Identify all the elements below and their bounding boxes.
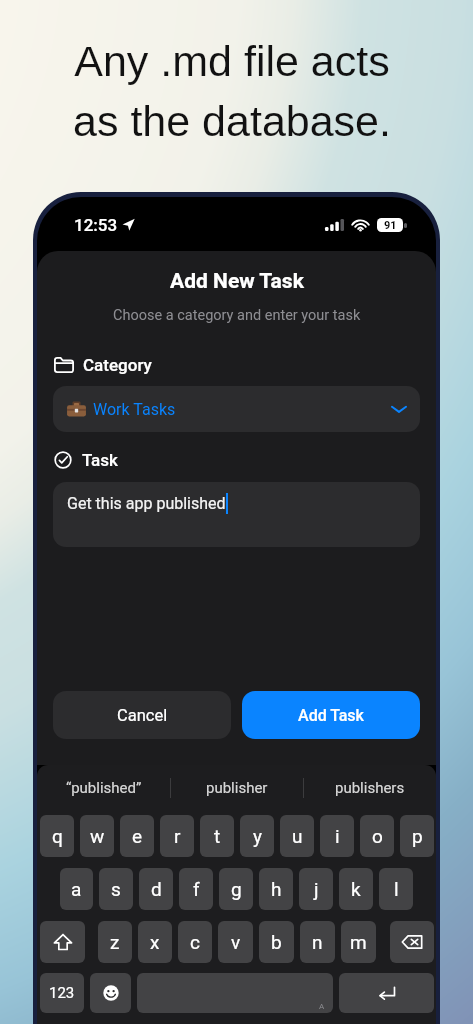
staticText: publisher (206, 779, 268, 797)
button[interactable]: Get this app published (53, 482, 420, 547)
staticText: w (90, 825, 105, 847)
staticText: v (231, 931, 241, 953)
button[interactable]: i (320, 815, 354, 857)
button[interactable]: 123 (40, 973, 84, 1013)
staticText: Choose a category and enter your task (113, 307, 361, 324)
staticText: “published” (66, 779, 142, 797)
staticText: Any .md file acts (74, 37, 390, 85)
staticText: Category (83, 355, 152, 375)
staticText: n (312, 931, 323, 953)
staticText: p (412, 825, 423, 847)
staticText: k (351, 878, 361, 900)
staticText: a (71, 878, 82, 900)
button[interactable]: Shift (40, 921, 85, 963)
button[interactable]: t (200, 815, 234, 857)
staticText: t (214, 825, 221, 847)
staticText: i (335, 825, 340, 847)
button[interactable]: b (259, 921, 294, 963)
button[interactable]: j (299, 868, 333, 910)
button[interactable]: s (99, 868, 133, 910)
button[interactable]: d (139, 868, 173, 910)
button[interactable]: Cancel (53, 691, 231, 739)
staticText: z (110, 931, 120, 953)
button[interactable]: m (341, 921, 376, 963)
staticText: j (314, 878, 319, 900)
button[interactable]: l (379, 868, 413, 910)
button[interactable]: u (280, 815, 314, 857)
staticText: o (372, 825, 383, 847)
staticText: x (150, 931, 160, 953)
staticText: q (52, 825, 63, 847)
staticText: Cancel (117, 706, 168, 725)
button[interactable]: c (178, 921, 212, 963)
staticText: h (271, 878, 282, 900)
button[interactable]: publisher (171, 765, 303, 810)
button[interactable]: q (40, 815, 74, 857)
button[interactable]: x (138, 921, 172, 963)
staticText: c (190, 931, 200, 953)
staticText: Task (82, 450, 118, 470)
staticText: e (132, 825, 143, 847)
button[interactable]: z (98, 921, 132, 963)
staticText: 123 (49, 984, 75, 1002)
staticText: u (292, 825, 303, 847)
button[interactable]: Emoji (90, 973, 131, 1013)
staticText: l (394, 878, 399, 900)
button[interactable]: f (179, 868, 213, 910)
button[interactable]: w (80, 815, 114, 857)
staticText: Add Task (298, 706, 364, 725)
button[interactable]: k (339, 868, 373, 910)
button[interactable]: publishers (304, 765, 436, 810)
button[interactable]: r (160, 815, 194, 857)
button[interactable]: y (240, 815, 274, 857)
button[interactable]: A (137, 973, 333, 1013)
staticText: y (253, 825, 262, 847)
staticText: 91 (384, 219, 397, 232)
staticText: A (319, 1002, 325, 1011)
staticText: Add New Task (170, 269, 304, 294)
button[interactable]: Add Task (242, 691, 420, 739)
staticText: b (271, 931, 282, 953)
staticText: r (174, 825, 181, 847)
button[interactable]: v (218, 921, 253, 963)
button[interactable]: Return (339, 973, 434, 1013)
staticText: as the database. (73, 97, 391, 145)
staticText: publishers (335, 779, 405, 797)
button[interactable]: o (360, 815, 394, 857)
button[interactable]: g (219, 868, 253, 910)
button[interactable]: h (259, 868, 293, 910)
staticText: d (151, 878, 162, 900)
staticText: m (350, 931, 367, 953)
staticText: 12:53 (74, 215, 118, 235)
staticText: Get this app published (67, 494, 226, 513)
button[interactable]: p (400, 815, 434, 857)
button[interactable]: “published” (37, 765, 170, 810)
button[interactable]: Work Tasks (53, 386, 420, 432)
button[interactable]: Backspace (390, 921, 434, 963)
button[interactable]: a (60, 868, 93, 910)
button[interactable]: e (120, 815, 154, 857)
staticText: Work Tasks (93, 400, 176, 419)
staticText: g (231, 878, 242, 900)
button[interactable]: n (300, 921, 335, 963)
staticText: s (111, 878, 121, 900)
staticText: f (193, 878, 200, 900)
